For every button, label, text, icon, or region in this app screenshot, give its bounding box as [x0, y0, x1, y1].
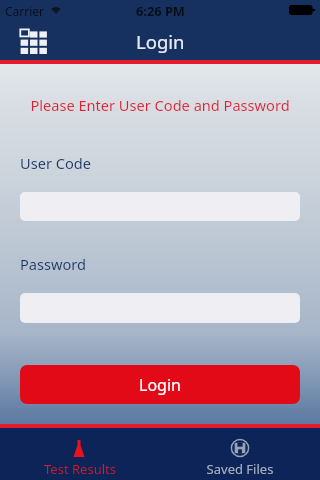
staticText: Test Results: [0, 460, 160, 478]
staticText: User Code: [20, 153, 91, 173]
staticText: Please Enter User Code and Password: [0, 95, 320, 115]
button[interactable]: Test Results: [0, 428, 160, 480]
staticText: 6:26 PM: [136, 2, 185, 19]
button[interactable]: [20, 293, 300, 323]
staticText: Saved Files: [160, 460, 320, 478]
button[interactable]: Menu: [19, 28, 49, 55]
button[interactable]: Login: [20, 365, 300, 404]
staticText: Carrier: [5, 3, 45, 19]
staticText: Login: [136, 29, 185, 54]
button[interactable]: Saved Files: [160, 428, 320, 480]
staticText: Password: [20, 254, 87, 274]
staticText: Login: [139, 374, 181, 396]
